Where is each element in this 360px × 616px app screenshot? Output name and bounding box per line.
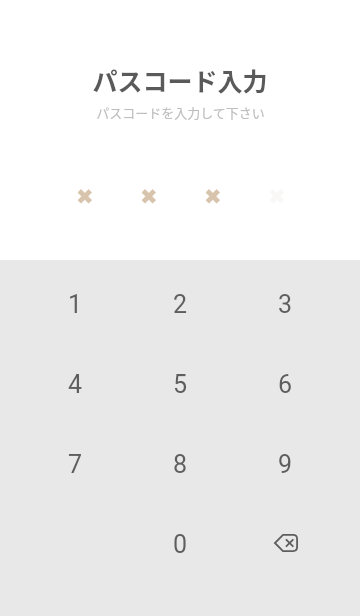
staticText: 3 [278, 290, 293, 319]
staticText: ✖ [140, 185, 158, 209]
staticText: 4 [68, 370, 83, 399]
button[interactable]: 0 [128, 504, 233, 584]
staticText: パスコードを入力して下さい [96, 103, 265, 122]
staticText: 7 [68, 450, 83, 479]
staticText: 6 [278, 370, 293, 399]
staticText: ✖ [268, 185, 286, 209]
staticText: 1 [68, 290, 83, 319]
staticText: ✖ [76, 185, 94, 209]
button[interactable]: 4 [23, 344, 128, 424]
button[interactable]: 6 [233, 344, 338, 424]
button[interactable]: 8 [128, 424, 233, 504]
button[interactable]: 3 [233, 264, 338, 344]
button[interactable]: 7 [23, 424, 128, 504]
staticText: 2 [173, 290, 188, 319]
button[interactable]: 5 [128, 344, 233, 424]
staticText: 9 [278, 450, 293, 479]
staticText: パスコード入力 [92, 62, 268, 98]
button[interactable]: Backspace [233, 504, 338, 584]
staticText: 8 [173, 450, 188, 479]
button[interactable]: 1 [23, 264, 128, 344]
button[interactable]: 2 [128, 264, 233, 344]
staticText: ✖ [204, 185, 222, 209]
button[interactable]: 9 [233, 424, 338, 504]
staticText: 0 [173, 530, 188, 559]
staticText: 5 [173, 370, 188, 399]
